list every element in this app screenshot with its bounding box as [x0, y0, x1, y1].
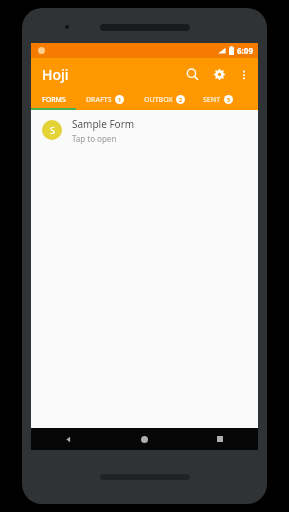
- button[interactable]: Recent apps: [182, 428, 258, 450]
- button[interactable]: Settings: [206, 61, 233, 88]
- button[interactable]: SENT: [194, 91, 242, 108]
- button[interactable]: Back: [31, 428, 106, 450]
- staticText: 6:09: [237, 45, 253, 56]
- staticText: 2: [179, 96, 183, 103]
- button[interactable]: DRAFTS: [76, 91, 134, 108]
- staticText: OUTBOX: [144, 95, 173, 105]
- button[interactable]: More options: [233, 64, 255, 86]
- button[interactable]: OUTBOX: [134, 91, 194, 108]
- button[interactable]: FORMS: [31, 91, 76, 108]
- button[interactable]: S: [31, 110, 258, 150]
- staticText: FORMS: [42, 95, 66, 105]
- staticText: Tap to open: [72, 133, 117, 144]
- button[interactable]: Home: [106, 428, 182, 450]
- button[interactable]: Search: [179, 61, 206, 88]
- staticText: Hoji: [42, 65, 69, 84]
- staticText: 1: [118, 96, 122, 103]
- staticText: SENT: [203, 95, 221, 105]
- staticText: S: [50, 124, 55, 136]
- staticText: DRAFTS: [86, 95, 112, 105]
- staticText: 5: [227, 96, 231, 103]
- staticText: Sample Form: [72, 117, 135, 131]
